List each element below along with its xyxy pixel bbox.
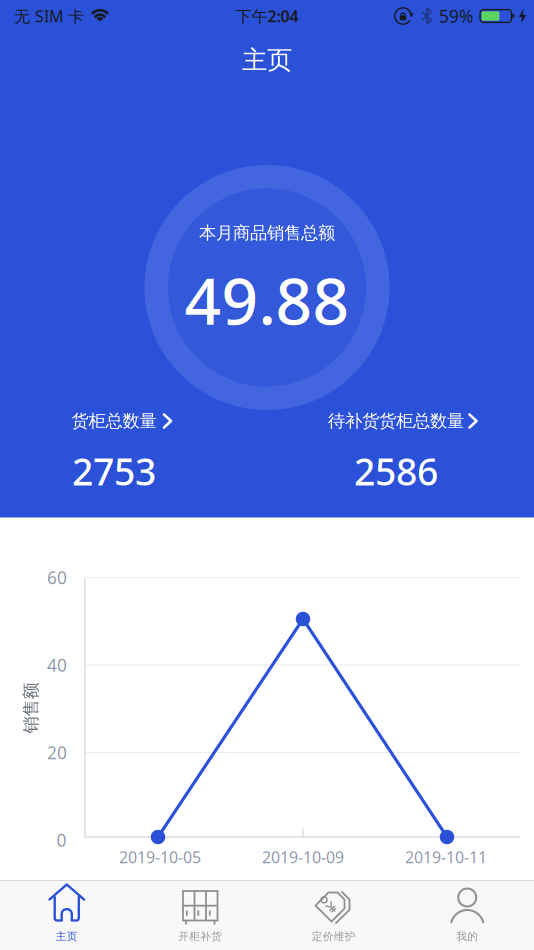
button[interactable]: 我的	[400, 880, 534, 950]
staticText: 2019-10-09	[262, 846, 344, 868]
staticText: 销售额	[5, 697, 56, 719]
staticText: 无 SIM 卡	[14, 5, 84, 27]
button[interactable]: 开柜补货	[133, 880, 267, 950]
button[interactable]: 货柜总数量	[14, 396, 214, 496]
staticText: 货柜总数量	[71, 410, 156, 432]
staticText: 2019-10-05	[119, 846, 201, 868]
staticText: 2586	[354, 446, 438, 496]
staticText: 下午2:04	[235, 5, 298, 27]
staticText: 60	[47, 566, 67, 589]
staticText: 待补货货柜总数量	[328, 410, 464, 432]
button[interactable]: 待补货货柜总数量	[300, 396, 500, 496]
staticText: 2019-10-11	[405, 846, 487, 868]
staticText: 我的	[456, 930, 478, 943]
staticText: 20	[47, 741, 67, 764]
staticText: 40	[47, 653, 67, 676]
staticText: 本月商品销售总额	[199, 222, 335, 244]
button[interactable]: 定价维护	[267, 880, 400, 950]
staticText: 59%	[439, 4, 473, 27]
staticText: 2753	[72, 446, 156, 496]
staticText: 开柜补货	[178, 930, 222, 943]
button[interactable]: 主页	[0, 880, 133, 950]
staticText: 0	[56, 828, 66, 851]
staticText: 定价维护	[312, 930, 356, 943]
staticText: 主页	[242, 44, 292, 75]
staticText: 主页	[56, 930, 78, 943]
staticText: 49.88	[184, 257, 349, 342]
